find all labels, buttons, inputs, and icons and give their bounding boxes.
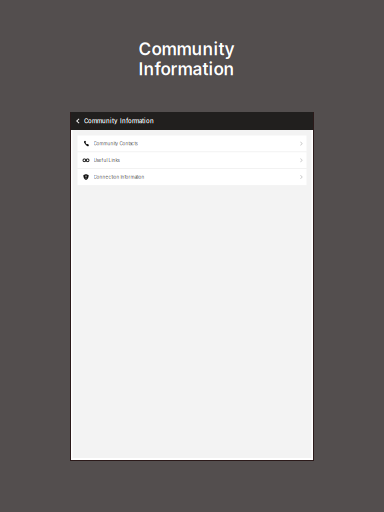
button[interactable]: Connection Information xyxy=(77,169,306,185)
staticText: Useful Links xyxy=(93,158,119,163)
button[interactable]: Community Contacts xyxy=(77,135,306,152)
staticText: Community Information xyxy=(84,117,154,125)
button[interactable]: Back xyxy=(71,112,84,130)
staticText: Community Contacts xyxy=(93,141,137,146)
button[interactable]: Useful Links xyxy=(77,152,306,168)
staticText: Connection Information xyxy=(93,174,144,180)
staticText: Information xyxy=(138,59,234,79)
staticText: Community xyxy=(138,39,234,59)
